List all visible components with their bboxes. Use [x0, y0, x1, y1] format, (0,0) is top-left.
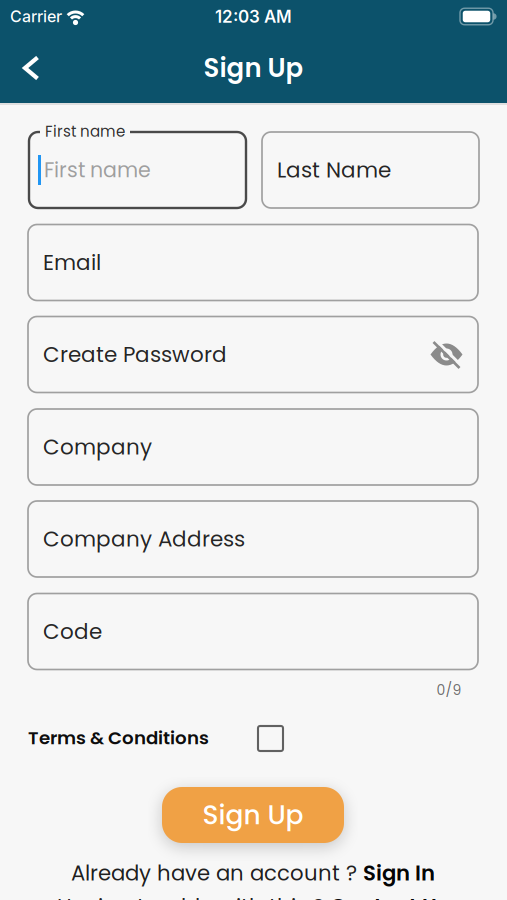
staticText: Carrier — [10, 7, 62, 26]
button[interactable]: Show password — [430, 342, 463, 367]
button[interactable]: Already have an account ? — [71, 858, 435, 888]
staticText: 0/9 — [436, 680, 461, 700]
button[interactable]: Having trouble with this ? — [57, 892, 449, 900]
button[interactable]: Back — [0, 45, 41, 90]
staticText: Terms & Conditions — [28, 725, 209, 751]
staticText: Already have an account ? — [71, 858, 363, 888]
staticText: Create Password — [43, 339, 227, 370]
staticText: Sign Up — [202, 796, 303, 833]
staticText: Last Name — [277, 155, 391, 185]
button[interactable]: Sign Up — [162, 787, 344, 843]
staticText: Email — [43, 247, 101, 278]
staticText: 12:03 AM — [215, 6, 292, 27]
staticText: Company — [43, 432, 152, 462]
staticText: First name — [44, 156, 151, 184]
staticText: Code — [43, 616, 102, 647]
staticText: Having trouble with this ? — [57, 892, 330, 900]
staticText: Sign Up — [203, 50, 303, 86]
staticText: Sign In — [363, 858, 435, 888]
staticText: Company Address — [43, 524, 245, 554]
staticText: First name — [45, 121, 125, 142]
staticText: Contact Us — [330, 892, 449, 900]
button[interactable]: Accept Terms & Conditions — [258, 726, 283, 751]
